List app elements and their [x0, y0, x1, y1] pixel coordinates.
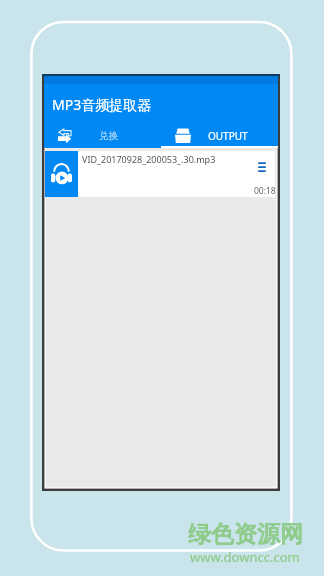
other: More options: [258, 162, 266, 173]
staticText: 绿色资源网: [188, 520, 303, 549]
other: Output folder: [175, 128, 191, 143]
button[interactable]: VID_20170928_200053_.30.mp3: [45, 151, 275, 197]
staticText: www.downcc.com: [190, 548, 300, 566]
button[interactable]: Convert: [44, 123, 161, 148]
other: Convert: [58, 129, 71, 142]
staticText: 00:18: [254, 185, 276, 197]
staticText: OUTPUT: [208, 129, 248, 143]
staticText: MP3音频提取器: [52, 95, 152, 114]
staticText: VID_20170928_200053_.30.mp3: [82, 153, 216, 165]
button[interactable]: Output folder: [161, 123, 278, 148]
staticText: 兑换: [99, 130, 118, 142]
button[interactable]: More options: [258, 162, 266, 173]
